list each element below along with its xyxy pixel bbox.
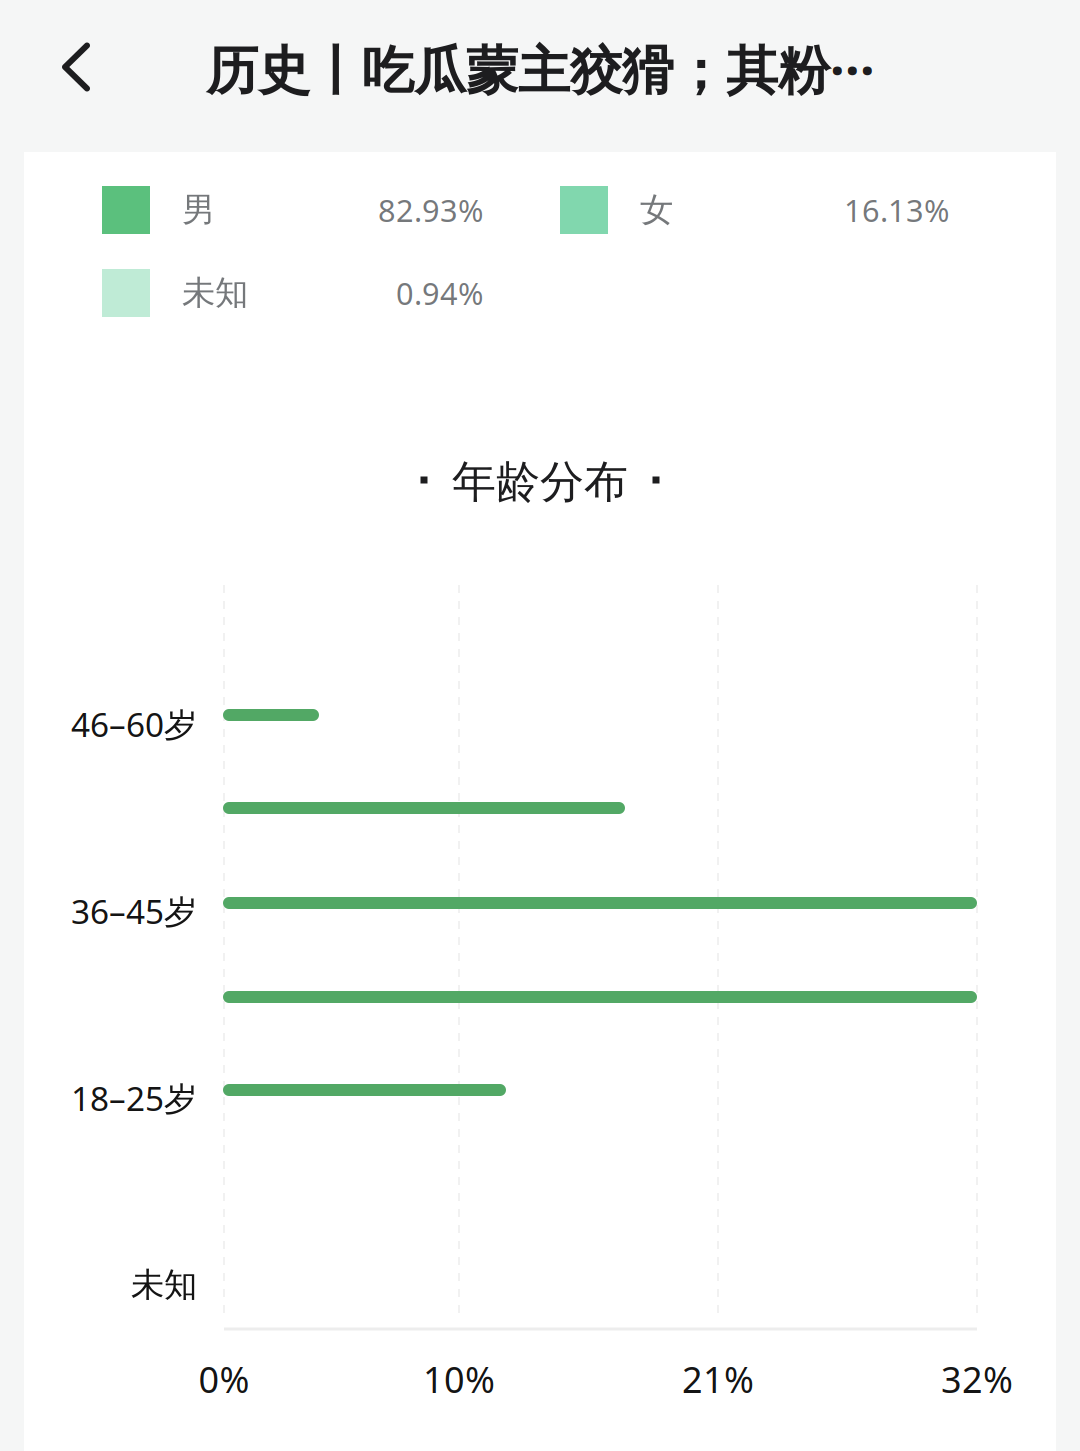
staticText: 46–60岁 xyxy=(71,702,197,746)
staticText: 21% xyxy=(682,1355,754,1403)
button[interactable]: Back xyxy=(16,12,136,122)
staticText: 36–45岁 xyxy=(71,889,197,933)
staticText: 未知 xyxy=(131,1264,197,1305)
staticText: 男 xyxy=(182,189,215,230)
staticText: 82.93% xyxy=(378,190,483,230)
staticText: 18–25岁 xyxy=(71,1076,197,1120)
staticText: 16.13% xyxy=(844,190,949,230)
staticText: 女 xyxy=(640,189,673,230)
staticText: 32% xyxy=(941,1355,1013,1403)
staticText: 0% xyxy=(198,1355,249,1403)
staticText: 10% xyxy=(423,1355,495,1403)
staticText: 0.94% xyxy=(396,273,483,313)
staticText: 年龄分布 xyxy=(452,455,628,509)
staticText: 未知 xyxy=(182,272,248,313)
staticText: 历史丨吃瓜蒙主狡猾；其粉··· xyxy=(206,34,875,104)
